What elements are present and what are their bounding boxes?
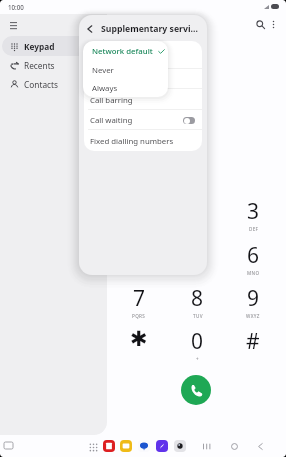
button[interactable]: Caller ID [84,69,202,89]
staticText: # [246,327,260,356]
staticText: + [196,356,199,362]
button[interactable]: 0 [171,327,223,365]
button[interactable]: More options [265,16,281,32]
button[interactable]: App [138,440,150,452]
staticText: Fixed dialling numbers [90,136,174,147]
button[interactable]: All apps [89,443,98,452]
button[interactable]: 3 [227,197,279,235]
button[interactable]: Recents [2,55,103,75]
staticText: MNO [247,270,260,276]
button[interactable]: Never [83,61,168,79]
staticText: WXYZ [246,313,260,319]
button[interactable]: Recent apps [200,440,213,453]
button[interactable]: 9 [227,284,279,322]
staticText: Supplementary servi... [101,23,198,35]
staticText: ✱ [130,327,148,351]
button[interactable]: Search [252,16,268,32]
staticText: 8 [191,284,204,313]
button[interactable]: ✱ [113,327,165,365]
staticText: Keypad [24,41,55,52]
button[interactable]: Back [254,440,267,453]
button[interactable]: App [120,440,132,452]
staticText: Call waiting [90,115,133,126]
button[interactable]: Back [79,18,101,40]
staticText: 10:00 [8,3,24,11]
button[interactable]: 7 [113,284,165,322]
staticText: Contacts [24,79,58,90]
button[interactable]: Keypad [2,36,103,56]
button[interactable]: Home [228,440,241,453]
staticText: DEF [249,226,259,232]
button[interactable]: App [103,440,115,452]
button[interactable]: Call forwarding [84,49,202,69]
staticText: Call barring [90,95,133,106]
staticText: 6 [247,241,260,270]
button[interactable]: Call waiting [84,110,202,130]
button[interactable]: # [227,327,279,365]
staticText: Never [92,65,114,76]
staticText: Always [92,83,118,94]
button[interactable]: 8 [171,284,223,322]
staticText: 0 [191,327,204,356]
button[interactable]: Keyboard [2,439,15,452]
staticText: 7 [133,284,146,313]
button[interactable]: Call barring [84,90,202,110]
button[interactable]: 6 [227,241,279,279]
button[interactable]: Always [83,79,168,97]
button[interactable]: Contacts [2,74,103,94]
button[interactable]: App [174,440,186,452]
button[interactable]: Call [181,375,211,405]
button[interactable]: Network default [83,42,168,61]
staticText: 9 [247,284,260,313]
staticText: TUV [193,313,203,319]
button[interactable]: Fixed dialling numbers [84,131,202,151]
button[interactable]: App [156,440,168,452]
staticText: Network default [92,46,153,57]
button[interactable]: Menu [2,14,24,36]
staticText: PQRS [132,313,146,319]
staticText: Recents [24,60,55,71]
staticText: 3 [247,197,260,226]
